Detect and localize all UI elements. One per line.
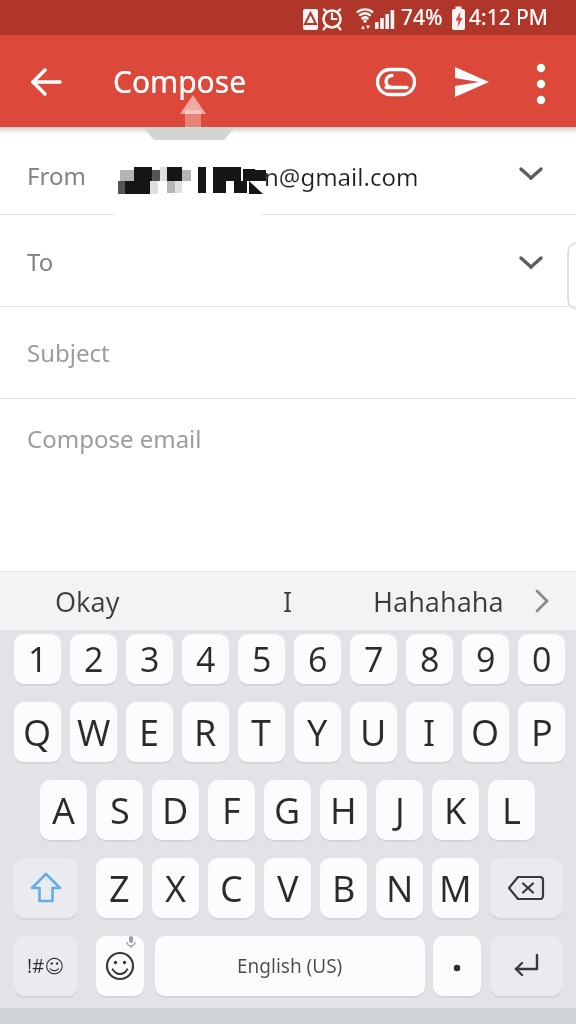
button[interactable]: B [320,858,367,918]
button[interactable] [372,60,420,104]
staticText: 74% [401,3,443,32]
staticText: H [330,786,357,835]
staticText: L [502,786,521,835]
button[interactable]: English (US) [155,936,425,996]
button[interactable]: A [40,780,87,840]
button[interactable]: !#☺ [14,936,78,996]
button[interactable]: H [320,780,367,840]
staticText: 5 [252,636,272,682]
staticText: E [139,708,160,757]
staticText: 6 [308,636,328,682]
button[interactable] [448,60,496,104]
button[interactable]: K [432,780,479,840]
button[interactable] [14,858,78,918]
button[interactable]: X [152,858,199,918]
staticText: I [423,708,436,757]
button[interactable]: 6 [294,634,341,684]
button[interactable]: 2 [70,634,117,684]
button[interactable]: E [126,702,173,762]
button[interactable]: 9 [462,634,509,684]
staticText: B [332,864,356,913]
button[interactable]: S [96,780,143,840]
staticText: 1 [28,636,48,682]
button[interactable] [490,936,562,996]
button[interactable] [23,60,71,104]
button[interactable]: W [70,702,117,762]
button[interactable] [490,858,562,918]
button[interactable]: L [488,780,535,840]
button[interactable]: 4 [182,634,229,684]
staticText: W [77,708,111,757]
staticText: J [395,786,405,835]
button[interactable]: 0 [518,634,565,684]
button[interactable]: D [152,780,199,840]
button[interactable]: O [462,702,509,762]
staticText: 4 [196,636,216,682]
staticText: Subject [27,336,110,369]
staticText: G [274,786,301,835]
button[interactable]: I [406,702,453,762]
button[interactable]: 1 [14,634,61,684]
button[interactable]: 3 [126,634,173,684]
button[interactable]: Okay [30,572,145,630]
staticText: 3 [140,636,160,682]
staticText: n@gmail.com [264,160,419,193]
staticText: O [471,708,500,757]
button[interactable]: F [208,780,255,840]
staticText: 8 [420,636,440,682]
staticText: 0 [532,636,552,682]
button[interactable]: N [376,858,423,918]
staticText: F [222,786,241,835]
button[interactable] [96,936,144,996]
button[interactable] [0,216,576,306]
button[interactable] [433,936,481,996]
button[interactable]: I [230,572,345,630]
button[interactable]: 5 [238,634,285,684]
staticText: Okay [55,583,120,620]
button[interactable]: Y [294,702,341,762]
button[interactable]: V [264,858,311,918]
button[interactable] [0,399,576,572]
staticText: 4:12 PM [469,3,548,32]
button[interactable] [0,307,576,398]
button[interactable]: G [264,780,311,840]
staticText: D [162,786,189,835]
staticText: V [277,864,299,913]
staticText: A [52,786,76,835]
staticText: Z [109,864,130,913]
staticText: R [194,708,217,757]
staticText: P [531,708,553,757]
staticText: C [220,864,243,913]
staticText: From [27,159,86,192]
staticText: 9 [476,636,496,682]
button[interactable]: Z [96,858,143,918]
button[interactable]: J [376,780,423,840]
button[interactable] [518,60,564,104]
staticText: S [110,786,130,835]
staticText: To [27,245,54,278]
button[interactable]: P [518,702,565,762]
button[interactable] [522,572,562,630]
staticText: 2 [84,636,104,682]
button[interactable]: R [182,702,229,762]
button[interactable]: 7 [350,634,397,684]
staticText: T [251,708,272,757]
staticText: M [439,864,472,913]
button[interactable]: Q [14,702,61,762]
staticText: English (US) [237,953,343,979]
staticText: Q [23,708,52,757]
staticText: X [165,864,187,913]
button[interactable]: Hahahaha [363,572,513,630]
staticText: Compose email [27,422,202,455]
staticText: Y [307,708,328,757]
button[interactable]: U [350,702,397,762]
staticText: Compose [113,61,247,102]
staticText: Hahahaha [373,583,504,620]
staticText: 7 [364,636,384,682]
button[interactable]: M [432,858,479,918]
button[interactable]: T [238,702,285,762]
button[interactable]: C [208,858,255,918]
staticText: !#☺ [27,953,65,979]
button[interactable]: 8 [406,634,453,684]
button[interactable] [0,127,576,215]
